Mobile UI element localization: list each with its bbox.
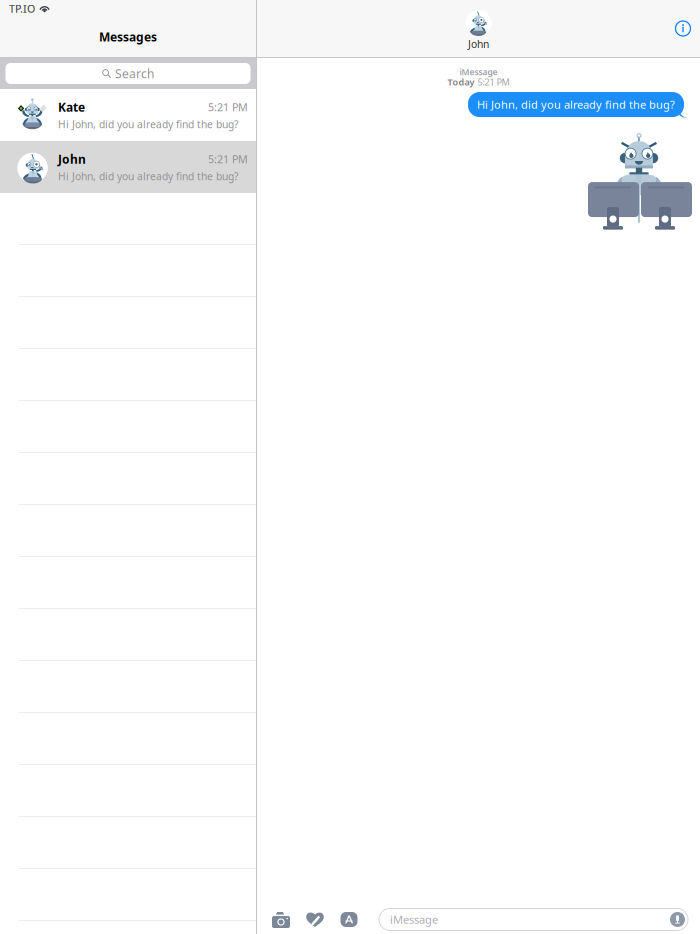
button[interactable]: App Store [336, 905, 362, 933]
staticText: 5:21 PM [208, 152, 248, 166]
staticText: Search [115, 65, 154, 82]
button[interactable]: Digital Touch [302, 905, 328, 933]
button[interactable]: Details [666, 11, 700, 45]
button[interactable]: iMessage [379, 908, 688, 930]
staticText: Messages [99, 29, 157, 45]
staticText: iMessage [459, 66, 497, 78]
button[interactable]: John [0, 141, 256, 193]
staticText: Hi John, did you already find the bug? [477, 97, 675, 112]
staticText: John [58, 151, 86, 167]
staticText: 5:21 PM [208, 100, 248, 114]
staticText: Today [447, 76, 474, 88]
button[interactable]: Kate [0, 89, 256, 141]
button[interactable]: Camera [268, 905, 294, 933]
staticText: TP.IO [9, 1, 35, 16]
button[interactable]: John [465, 6, 491, 51]
staticText: Kate [58, 99, 85, 115]
staticText: Hi John, did you already find the bug? [58, 169, 238, 183]
staticText: John [468, 37, 489, 51]
staticText: 5:21 PM [477, 76, 509, 88]
staticText: Hi John, did you already find the bug? [58, 117, 238, 131]
staticText: iMessage [390, 912, 438, 927]
